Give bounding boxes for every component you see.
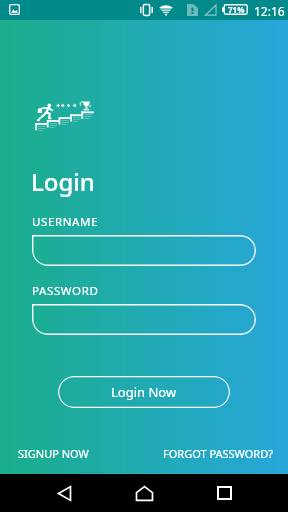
staticText: 12:16 — [254, 3, 285, 19]
staticText: Login — [31, 165, 95, 198]
staticText: FORGOT PASSWORD? — [163, 446, 273, 461]
button[interactable] — [32, 235, 256, 266]
button[interactable]: Back — [44, 474, 84, 512]
staticText: PASSWORD — [32, 283, 99, 299]
button[interactable]: FORGOT PASSWORD? — [163, 446, 273, 461]
staticText: 71% — [228, 4, 245, 15]
button[interactable]: Recent apps — [204, 474, 244, 512]
button[interactable]: Login Now — [58, 376, 230, 408]
button[interactable]: SIGNUP NOW — [18, 446, 89, 461]
staticText: USERNAME — [32, 214, 99, 230]
button[interactable]: Home — [124, 474, 164, 512]
button[interactable] — [32, 304, 256, 335]
staticText: Login Now — [111, 383, 177, 401]
staticText: SIGNUP NOW — [18, 446, 89, 461]
